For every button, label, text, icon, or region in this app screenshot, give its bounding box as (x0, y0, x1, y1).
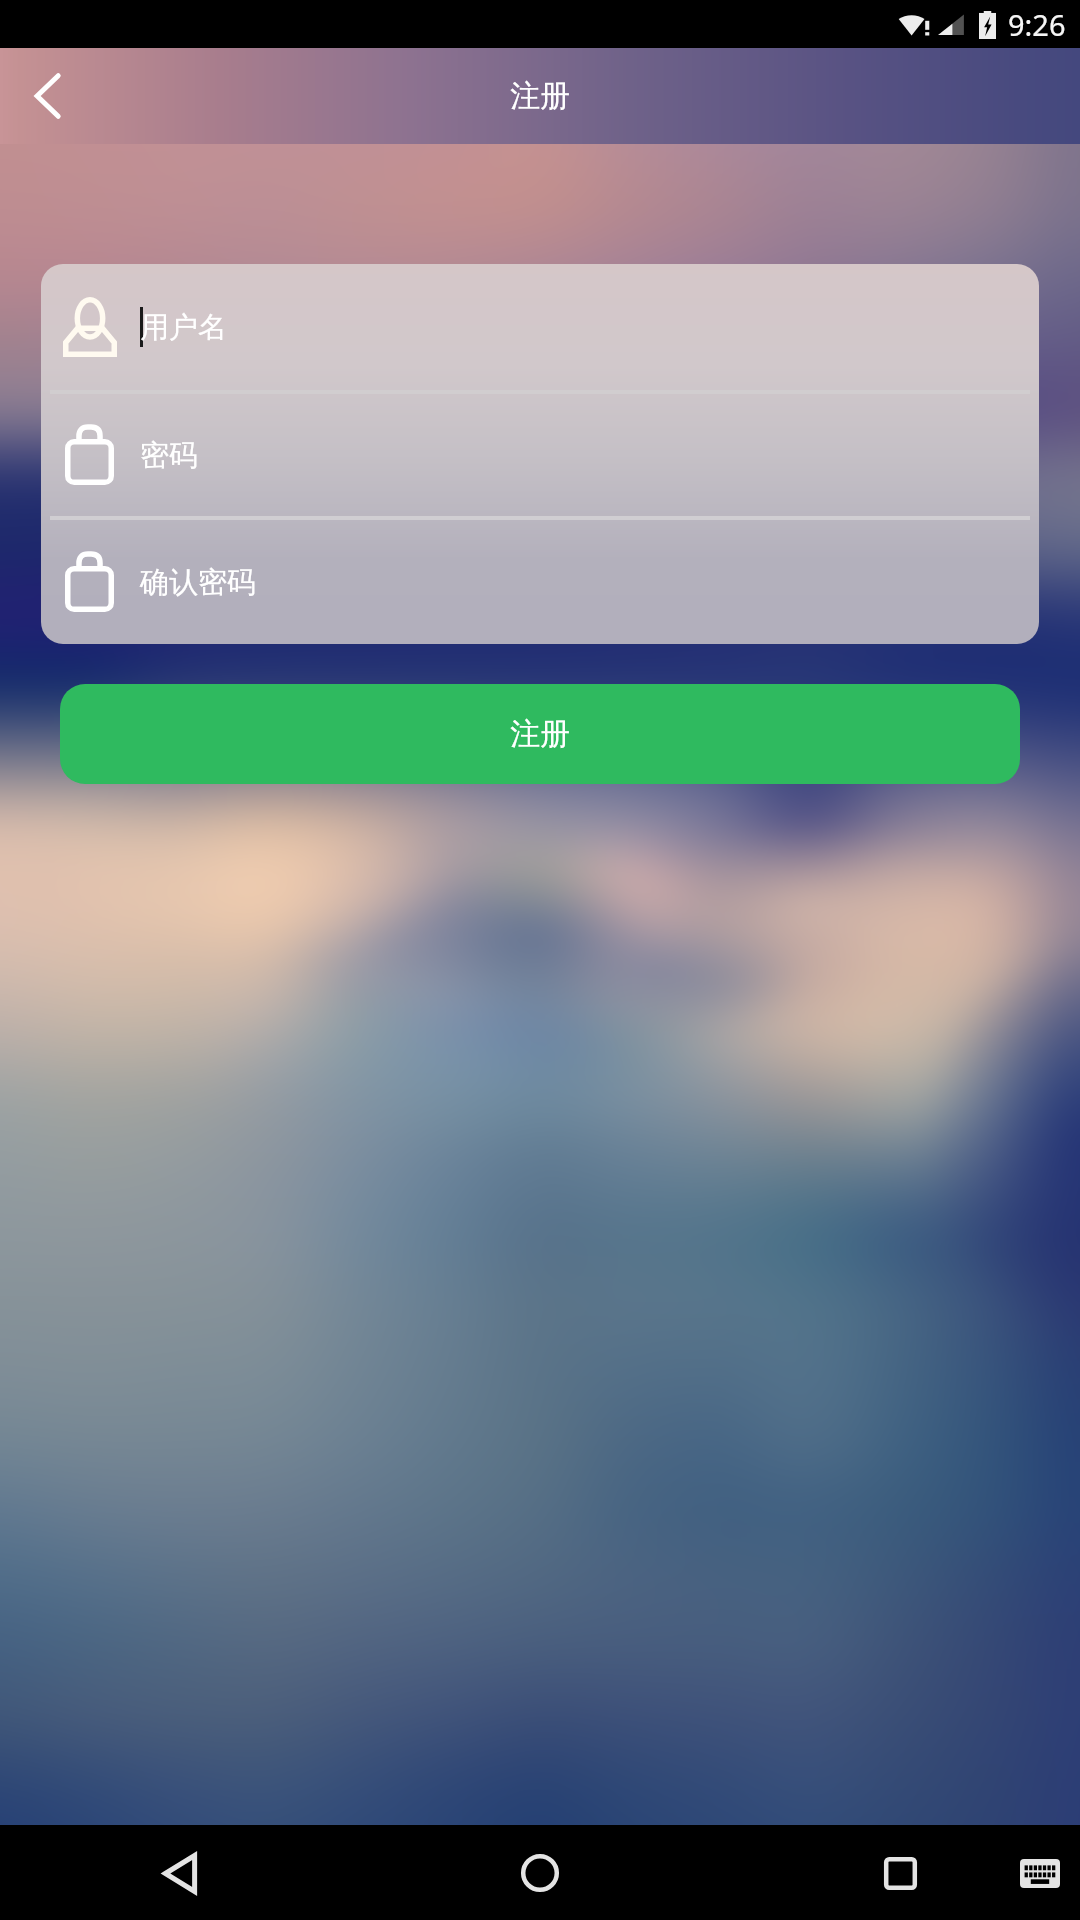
staticText: 确认密码 (140, 564, 256, 601)
button[interactable]: Back (140, 1833, 220, 1913)
button[interactable]: 用户名 (41, 264, 1039, 390)
staticText: 9:26 (1008, 5, 1066, 44)
button[interactable]: 注册 (60, 684, 1020, 784)
staticText: 注册 (510, 715, 570, 753)
button[interactable]: Recent apps (860, 1833, 940, 1913)
staticText: 密码 (140, 437, 198, 474)
button[interactable]: 确认密码 (41, 520, 1039, 644)
staticText: 用户名 (140, 309, 227, 346)
button[interactable]: Switch keyboard (1000, 1833, 1080, 1913)
button[interactable]: Back (0, 48, 96, 144)
button[interactable]: 密码 (41, 394, 1039, 516)
button[interactable]: Home (500, 1833, 580, 1913)
staticText: 注册 (510, 77, 570, 115)
